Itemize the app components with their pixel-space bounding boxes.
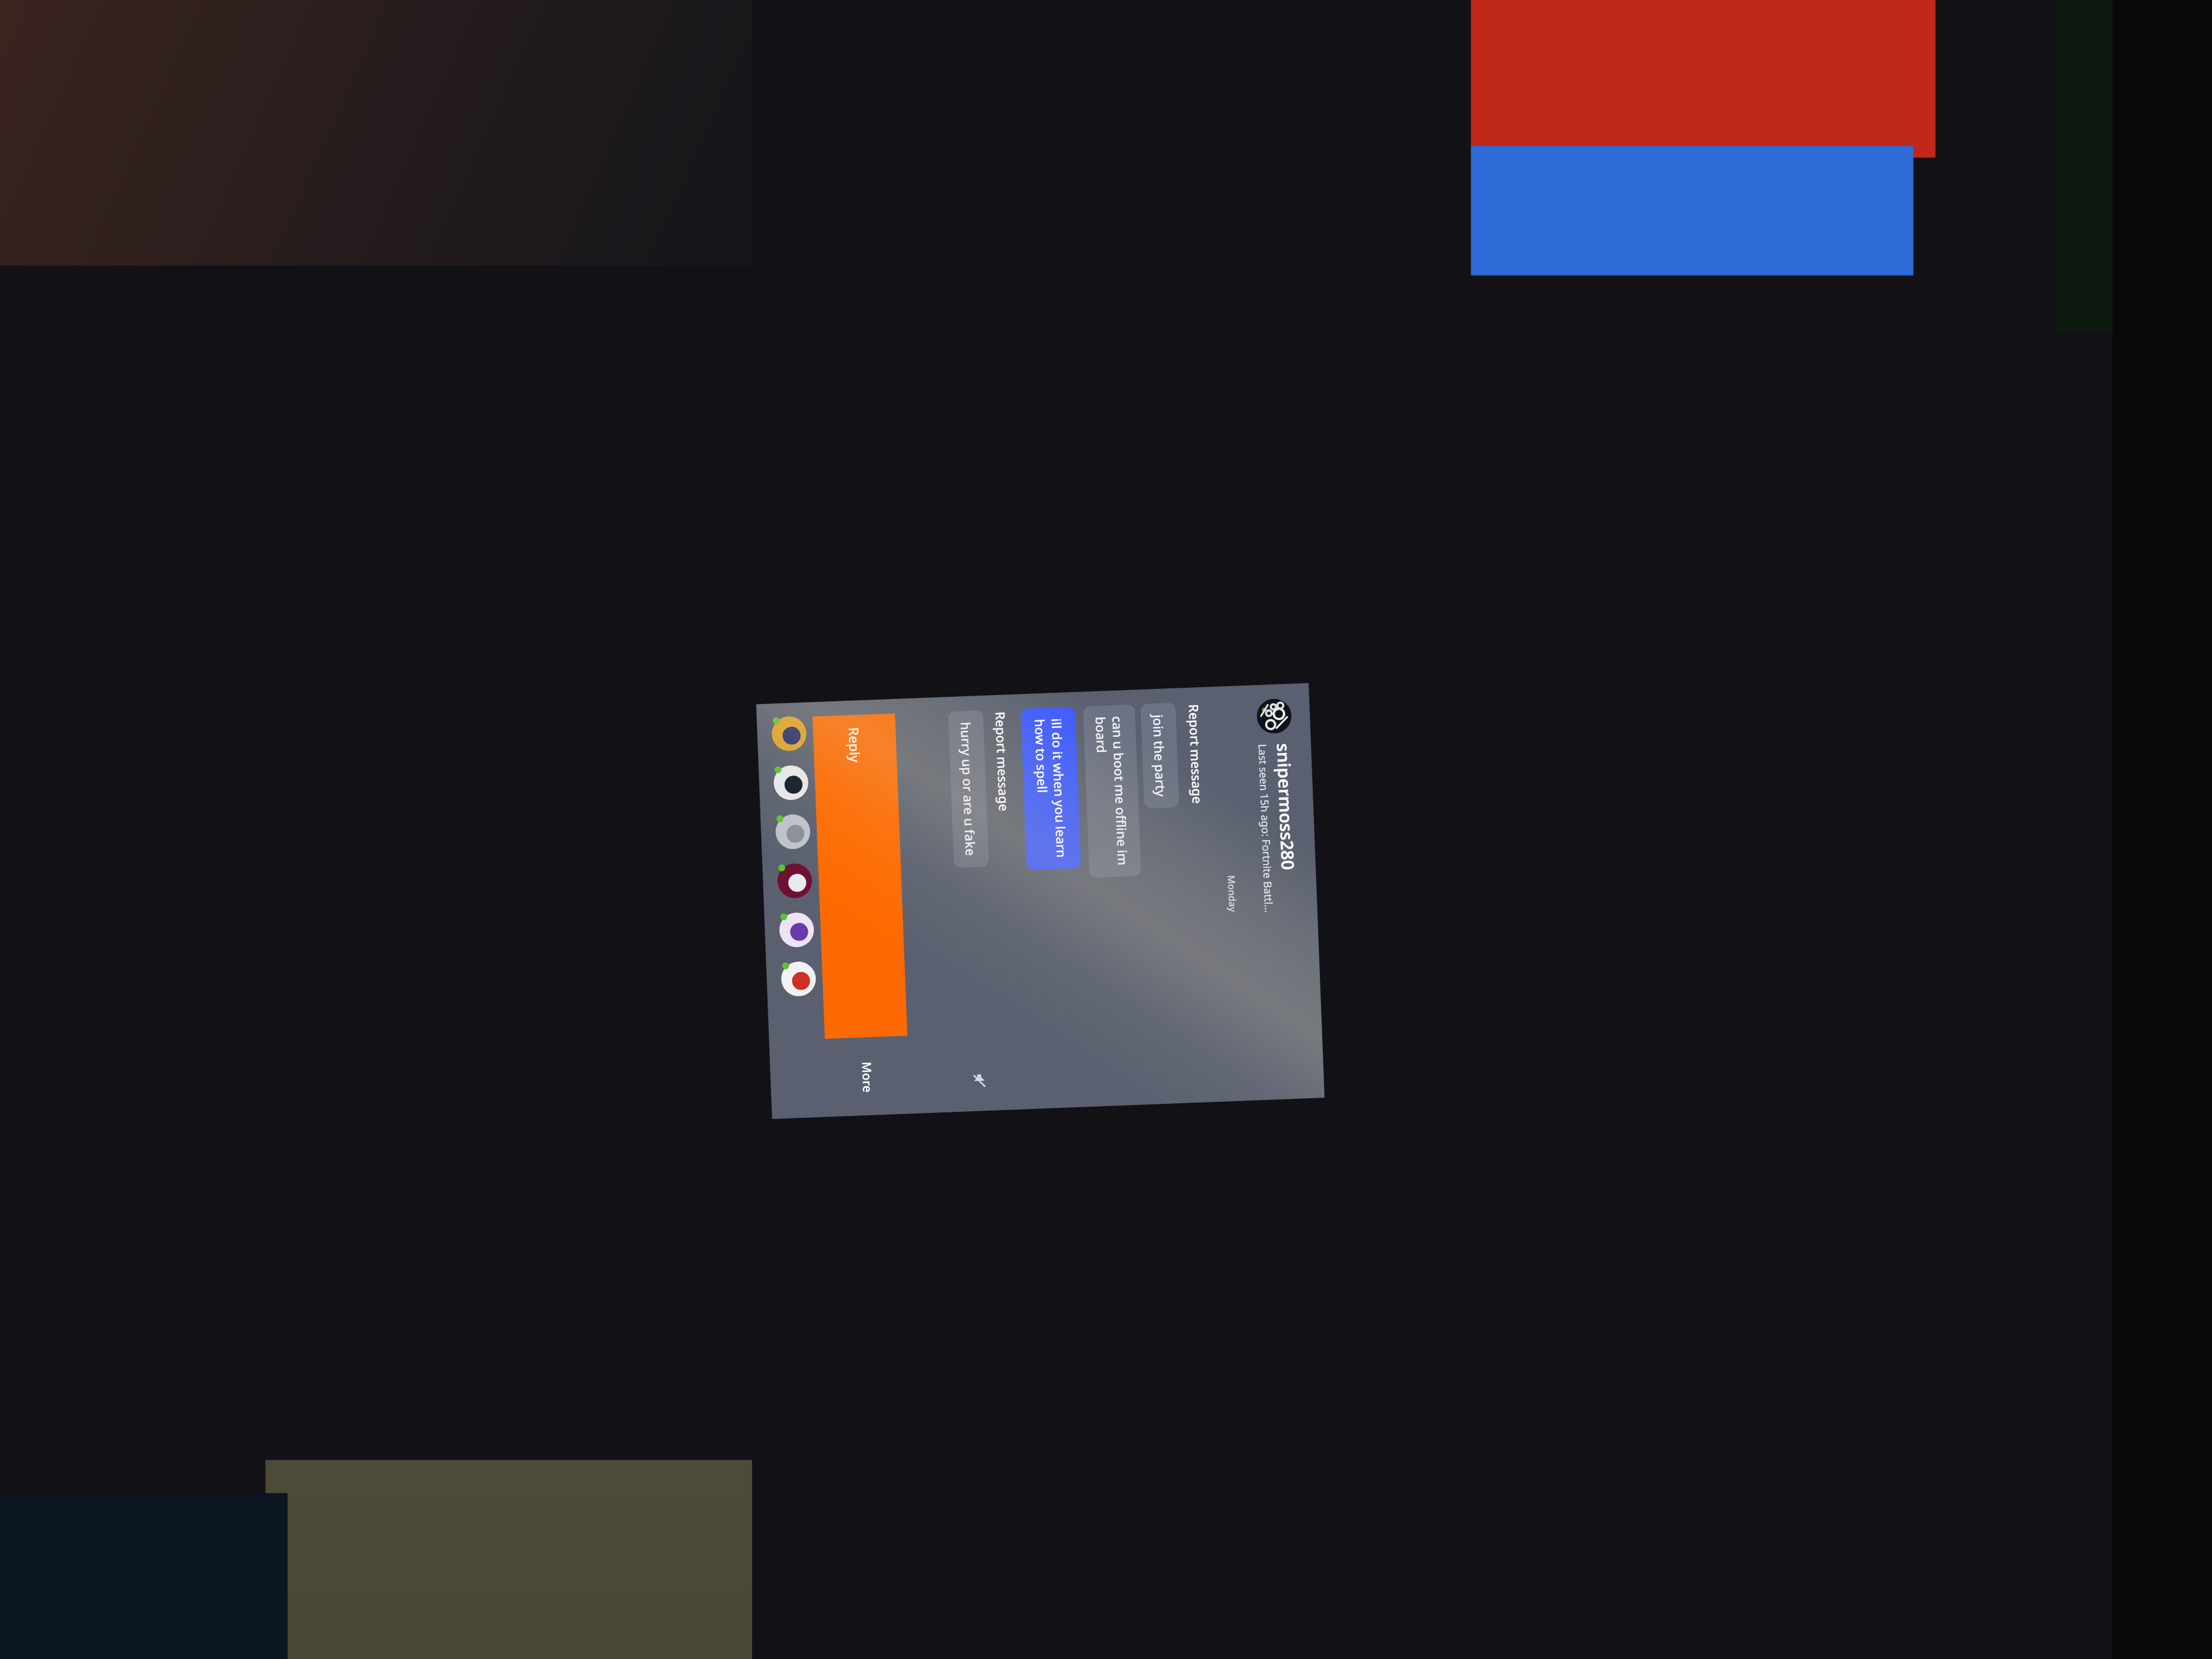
button[interactable]: snipermoss280	[1245, 683, 1312, 1100]
staticText: snipermoss280	[1272, 743, 1300, 871]
button[interactable]: Report message	[1180, 687, 1223, 1103]
button[interactable]: Mute conversation	[968, 1069, 991, 1092]
staticText: Report message	[1185, 704, 1207, 804]
staticText: can u boot me offline im board	[1092, 716, 1132, 866]
staticText: Last seen 15h ago: Fortnite Battl…	[1255, 744, 1276, 913]
button[interactable]: Friend	[773, 765, 809, 801]
staticText: Monday	[1225, 875, 1239, 912]
button[interactable]: Friend	[781, 961, 816, 997]
staticText: More	[859, 1061, 877, 1093]
staticText: hurry up or are u fake	[957, 722, 980, 856]
button[interactable]: join the party	[1140, 703, 1179, 809]
button[interactable]: Friend	[777, 863, 813, 899]
button[interactable]: More	[849, 1053, 886, 1101]
button[interactable]: Friend	[779, 912, 815, 948]
staticText: Reply	[845, 727, 864, 763]
button[interactable]: Reply	[812, 713, 907, 1039]
button[interactable]: can u boot me offline im board	[1083, 704, 1141, 878]
button[interactable]: hurry up or are u fake	[948, 710, 989, 868]
button[interactable]: Friend	[775, 814, 811, 850]
button[interactable]: Report message	[987, 694, 1029, 1110]
button[interactable]: Friend	[771, 716, 807, 752]
button[interactable]: ill do it when you learn how to spell	[1020, 706, 1081, 870]
staticText: Report message	[992, 711, 1013, 812]
staticText: join the party	[1150, 714, 1170, 797]
staticText: ill do it when you learn how to spell	[1031, 718, 1071, 859]
